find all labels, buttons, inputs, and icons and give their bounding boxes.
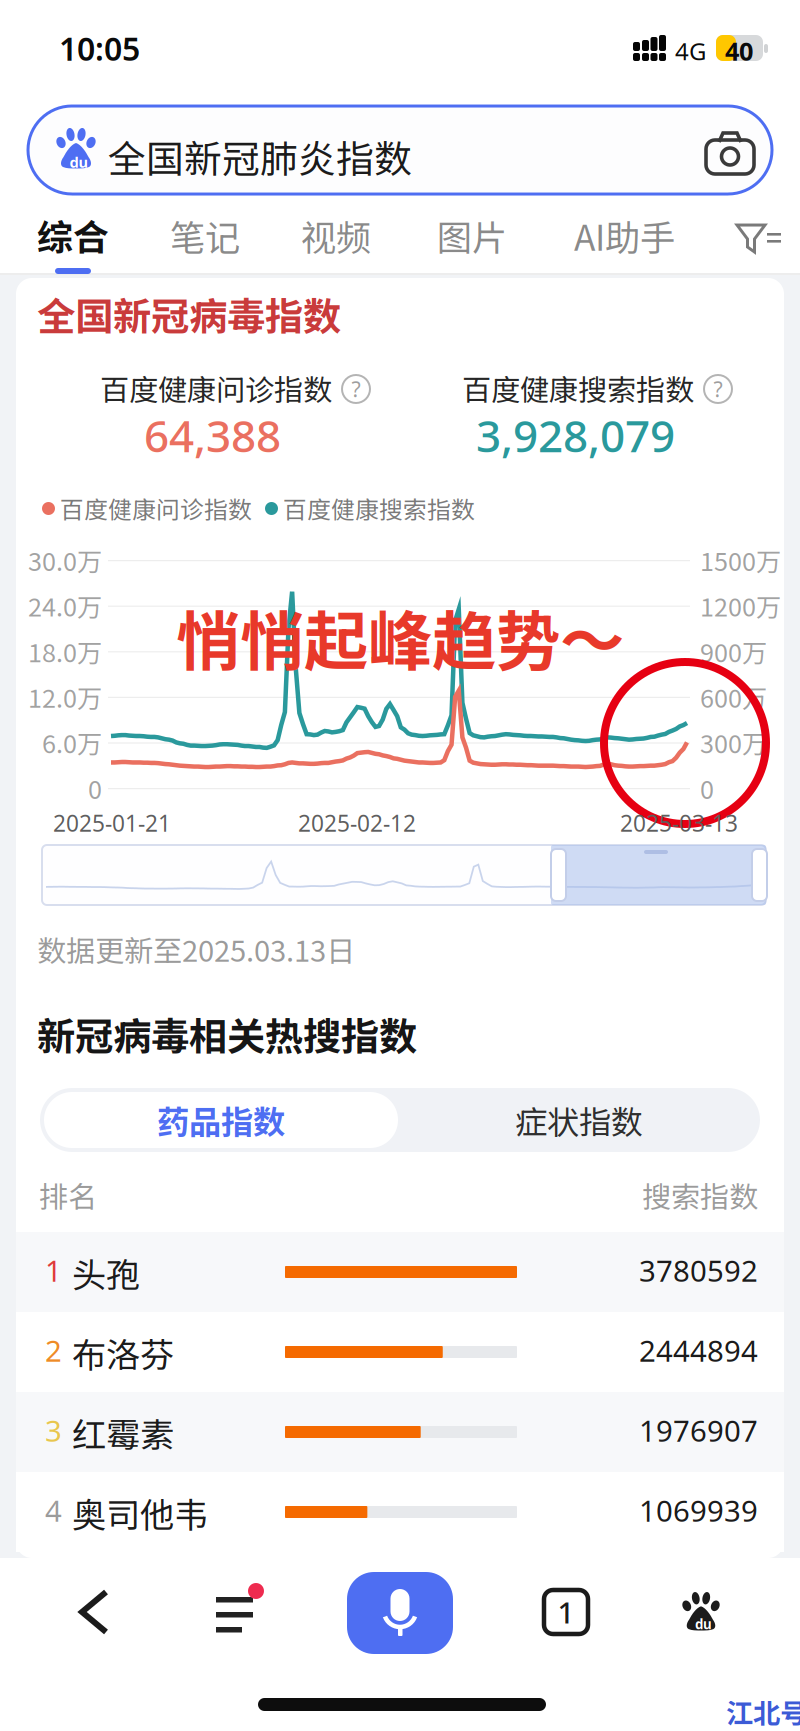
button[interactable]: Filter [736, 222, 782, 256]
staticText: 3 [45, 1411, 62, 1450]
staticText: 图片 [437, 210, 507, 261]
staticText: 数据更新至2025.03.13日 [37, 928, 355, 970]
staticText: 症状指数 [515, 1097, 643, 1143]
staticText: 2025-01-21 [53, 808, 171, 838]
staticText: 40 [725, 34, 753, 68]
staticText: 笔记 [170, 210, 240, 261]
staticText: 搜索指数 [642, 1174, 758, 1216]
staticText: 百度健康搜索指数 [283, 491, 475, 525]
button[interactable]: du [28, 106, 772, 194]
staticText: 1976907 [639, 1411, 758, 1450]
staticText: AI助手 [574, 210, 675, 261]
staticText: 2444894 [639, 1331, 758, 1370]
staticText: 悄悄起峰趋势～ [176, 590, 624, 683]
staticText: 全国新冠病毒指数 [37, 286, 341, 341]
staticText: 视频 [301, 210, 371, 261]
button[interactable]: 视频 [301, 208, 375, 276]
staticText: du [70, 152, 89, 172]
button[interactable]: 4 [16, 1472, 784, 1552]
staticText: 新冠病毒相关热搜指数 [37, 1006, 417, 1061]
staticText: 2 [45, 1331, 62, 1370]
staticText: 30.0万 [28, 542, 102, 578]
button[interactable]: Back [60, 1572, 130, 1652]
button[interactable]: AI助手 [574, 208, 684, 276]
staticText: 药品指数 [157, 1097, 285, 1143]
staticText: 64,388 [144, 406, 281, 464]
staticText: 1 [557, 1592, 574, 1631]
staticText: ? [351, 375, 360, 403]
staticText: 900万 [700, 633, 767, 669]
staticText: 24.0万 [28, 587, 102, 624]
staticText: 3780592 [639, 1251, 758, 1290]
staticText: du [695, 1615, 712, 1633]
button[interactable]: 3 [16, 1392, 784, 1472]
staticText: 10:05 [59, 27, 140, 69]
staticText: 排名 [39, 1174, 97, 1216]
button[interactable]: 症状指数 [402, 1092, 756, 1148]
button[interactable]: 笔记 [170, 208, 244, 276]
button[interactable]: Voice search [347, 1572, 453, 1654]
staticText: ? [713, 375, 722, 403]
staticText: 江北号 [726, 1692, 800, 1731]
staticText: 头孢 [72, 1248, 140, 1298]
button[interactable]: 图片 [437, 208, 511, 276]
staticText: 1500万 [700, 542, 781, 578]
staticText: 1 [45, 1251, 62, 1290]
button[interactable]: 综合 [37, 208, 113, 276]
button[interactable]: Tabs [531, 1572, 601, 1652]
button[interactable]: 1 [16, 1232, 784, 1312]
staticText: 12.0万 [28, 679, 102, 715]
staticText: 4G [675, 35, 706, 67]
staticText: 3,928,079 [476, 406, 675, 464]
staticText: 全国新冠肺炎指数 [108, 129, 412, 184]
staticText: 2025-02-12 [298, 808, 416, 838]
staticText: 0 [88, 770, 102, 806]
staticText: 4 [45, 1491, 62, 1530]
button[interactable]: Menu [197, 1572, 267, 1652]
button[interactable]: Baidu home [666, 1572, 736, 1652]
staticText: 6.0万 [42, 724, 102, 761]
staticText: 1200万 [700, 587, 781, 624]
staticText: 红霉素 [72, 1408, 174, 1458]
staticText: 600万 [700, 679, 767, 715]
staticText: 0 [700, 770, 714, 806]
staticText: 奥司他韦 [72, 1488, 208, 1538]
button[interactable]: 2 [16, 1312, 784, 1392]
staticText: 300万 [700, 724, 767, 761]
staticText: 百度健康问诊指数 [60, 491, 252, 525]
staticText: 综合 [37, 209, 109, 261]
button[interactable]: 药品指数 [44, 1092, 398, 1148]
staticText: 18.0万 [28, 633, 102, 669]
staticText: 百度健康问诊指数 [100, 367, 332, 409]
staticText: 1069939 [639, 1491, 758, 1530]
staticText: 百度健康搜索指数 [462, 367, 694, 409]
staticText: 布洛芬 [72, 1328, 174, 1378]
staticText: 2025-03-13 [620, 808, 738, 838]
